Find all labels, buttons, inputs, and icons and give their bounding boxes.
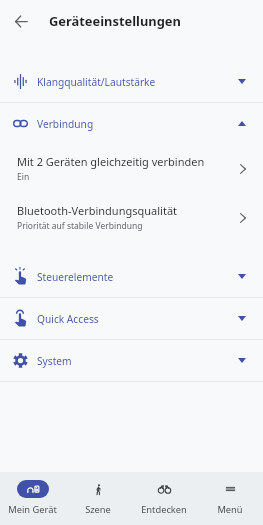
button[interactable]: Szene [65, 472, 131, 525]
button[interactable]: Steuerelemente [0, 256, 263, 297]
staticText: Quick Access [37, 312, 99, 326]
staticText: Verbindung [37, 117, 94, 131]
button[interactable]: Entdecken [131, 472, 197, 525]
staticText: Klangqualität/Lautstärke [37, 75, 156, 89]
staticText: Mein Gerät [8, 503, 57, 516]
button[interactable]: Quick Access [0, 298, 263, 339]
other: Entdecken [158, 485, 171, 494]
staticText: Mit 2 Geräten gleichzeitig verbinden [17, 154, 205, 169]
staticText: Ein [17, 171, 30, 183]
staticText: Steuerelemente [37, 270, 114, 284]
staticText: Szene [85, 503, 111, 516]
button[interactable]: Klangqualität/Lautstärke [0, 61, 263, 102]
staticText: Bluetooth-Verbindungsqualität [17, 203, 178, 218]
staticText: Geräteeinstellungen [49, 12, 181, 30]
other: Szene [95, 484, 102, 495]
staticText: System [37, 354, 72, 368]
button[interactable]: Bluetooth-Verbindungsqualität [0, 193, 263, 242]
other: Mein Gerät [27, 485, 40, 494]
button[interactable]: Mein Gerät [0, 472, 65, 525]
staticText: Menü [217, 503, 243, 516]
button[interactable]: Verbindung [0, 103, 263, 144]
staticText: Entdecken [141, 503, 187, 516]
button[interactable]: Menü [197, 472, 263, 525]
button[interactable]: Mit 2 Geräten gleichzeitig verbinden [0, 144, 263, 193]
button[interactable]: Zurück [7, 7, 35, 35]
other: Menü [225, 485, 236, 493]
staticText: Priorität auf stabile Verbindung [17, 220, 143, 232]
button[interactable]: System [0, 340, 263, 381]
